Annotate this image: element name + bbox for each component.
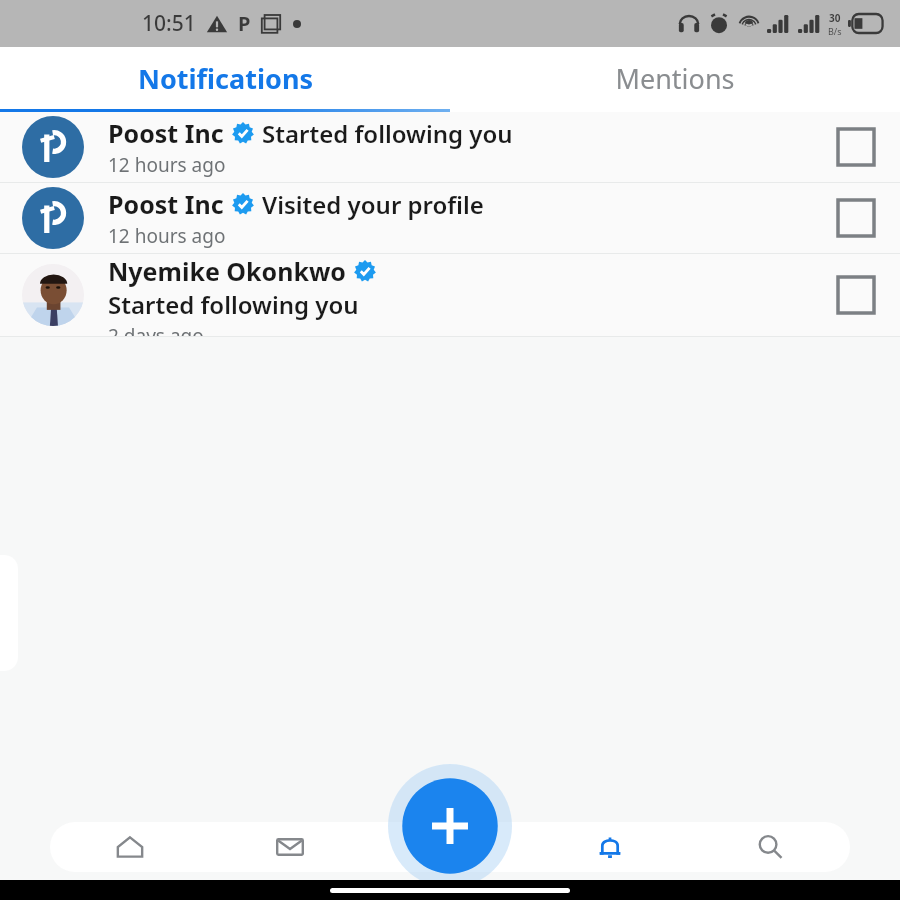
staticText: 12 hours ago: [108, 223, 226, 249]
button[interactable]: Select notification: [834, 196, 878, 240]
button[interactable]: Poost Inc: [0, 183, 900, 253]
button[interactable]: Select notification: [834, 125, 878, 169]
staticText: Poost Inc: [108, 116, 224, 150]
button[interactable]: Notifications: [0, 47, 450, 109]
staticText: Nyemike Okonkwo: [108, 254, 346, 288]
button[interactable]: Nyemike Okonkwo: [0, 254, 900, 336]
button[interactable]: Messages: [210, 822, 370, 872]
button[interactable]: Create new post: [388, 764, 512, 888]
staticText: Started following you: [262, 117, 513, 150]
staticText: 12 hours ago: [108, 152, 226, 178]
staticText: 30: [829, 11, 841, 25]
staticText: P: [238, 10, 251, 37]
staticText: 2 days ago: [108, 323, 204, 336]
staticText: 10:51: [142, 9, 196, 38]
button[interactable]: Search: [690, 822, 850, 872]
staticText: Mentions: [615, 60, 735, 97]
button[interactable]: Home: [50, 822, 210, 872]
button[interactable]: Select notification: [834, 273, 878, 317]
button[interactable]: Mentions: [450, 47, 900, 109]
button[interactable]: Notifications: [530, 822, 690, 872]
staticText: Visited your profile: [262, 188, 484, 221]
staticText: Notifications: [138, 60, 313, 97]
staticText: B/s: [828, 25, 842, 37]
staticText: Poost Inc: [108, 187, 224, 221]
button[interactable]: Poost Inc: [0, 112, 900, 182]
staticText: Started following you: [108, 288, 359, 321]
